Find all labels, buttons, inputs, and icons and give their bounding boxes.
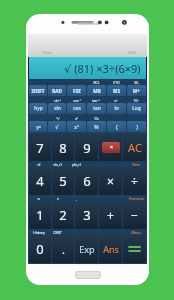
- staticText: STO: [113, 80, 120, 85]
- staticText: hyp: [34, 105, 43, 112]
- button[interactable]: (: [107, 121, 126, 132]
- staticText: Exp: [79, 243, 95, 255]
- staticText: x²: [74, 123, 79, 130]
- button[interactable]: FSE: [67, 85, 86, 96]
- staticText: tan: [93, 105, 101, 112]
- staticText: ln: [114, 105, 119, 112]
- button[interactable]: AC: [123, 134, 146, 161]
- staticText: ÷: [131, 173, 138, 189]
- staticText: c(n,r): [53, 162, 62, 167]
- staticText: Rate: [132, 162, 140, 167]
- button[interactable]: %: [87, 121, 106, 132]
- staticText: History: [33, 230, 45, 235]
- staticText: FSE: [73, 88, 81, 94]
- staticText: eˣ: [114, 98, 118, 103]
- staticText: −: [131, 207, 138, 223]
- staticText: sin: [54, 105, 61, 112]
- staticText: 3: [83, 206, 91, 224]
- staticText: π: [37, 196, 40, 201]
- staticText: M+: [133, 88, 140, 94]
- button[interactable]: Log: [127, 103, 146, 114]
- button[interactable]: ): [127, 121, 146, 132]
- staticText: p(n,r): [72, 162, 81, 167]
- staticText: ³√: [56, 116, 60, 121]
- staticText: 6: [83, 172, 91, 190]
- staticText: 5: [59, 172, 67, 190]
- staticText: 0: [36, 240, 44, 258]
- staticText: √: [55, 124, 59, 130]
- button[interactable]: √: [48, 121, 66, 132]
- staticText: cos: [73, 105, 81, 112]
- button[interactable]: Backspace: [99, 134, 122, 161]
- button[interactable]: M+: [127, 85, 146, 96]
- staticText: %: [94, 123, 99, 130]
- button[interactable]: cos: [67, 103, 86, 114]
- staticText: AC: [128, 140, 142, 155]
- button[interactable]: Home: [75, 271, 101, 279]
- staticText: .: [62, 242, 65, 257]
- button[interactable]: 0: [29, 235, 51, 263]
- button[interactable]: Equals: [123, 235, 146, 263]
- button[interactable]: MS: [107, 85, 126, 96]
- staticText: 1: [36, 206, 44, 224]
- button[interactable]: ÷: [123, 167, 146, 195]
- button[interactable]: tan: [87, 103, 106, 114]
- staticText: 7: [36, 139, 44, 157]
- button[interactable]: −: [123, 201, 146, 229]
- button[interactable]: hyp: [29, 103, 47, 114]
- button[interactable]: x²: [67, 121, 86, 132]
- staticText: M-: [134, 80, 139, 85]
- button[interactable]: 1: [29, 201, 51, 229]
- button[interactable]: Ans: [99, 235, 122, 263]
- staticText: n!: [37, 162, 41, 167]
- staticText: 10ˣ: [133, 98, 139, 103]
- button[interactable]: 7: [29, 134, 51, 161]
- staticText: ×: [107, 173, 114, 189]
- staticText: Float: [42, 50, 52, 55]
- staticText: √ (81) ×3÷(6×9): [64, 61, 141, 76]
- staticText: +: [107, 207, 114, 223]
- button[interactable]: ln: [107, 103, 126, 114]
- button[interactable]: 4: [29, 167, 51, 195]
- button[interactable]: 5: [52, 167, 74, 195]
- staticText: ): [136, 123, 138, 130]
- staticText: Menu: [131, 230, 141, 235]
- button[interactable]: 8: [52, 134, 74, 161]
- staticText: RCL: [93, 80, 100, 85]
- button[interactable]: Exp: [75, 235, 98, 263]
- button[interactable]: 3: [75, 201, 98, 229]
- staticText: CNST: [53, 230, 62, 235]
- staticText: Log: [132, 105, 141, 112]
- button[interactable]: MR: [87, 85, 106, 96]
- staticText: tan⁻¹: [92, 98, 100, 103]
- button[interactable]: SHIFT: [29, 85, 47, 96]
- staticText: SHIFT: [31, 88, 45, 94]
- button[interactable]: .: [52, 235, 74, 263]
- button[interactable]: +: [99, 201, 122, 229]
- staticText: 8: [59, 139, 67, 157]
- staticText: MR: [93, 88, 101, 94]
- staticText: (: [116, 123, 118, 130]
- staticText: 4: [36, 172, 44, 190]
- staticText: cos⁻¹: [73, 98, 81, 103]
- staticText: DEG: [128, 50, 137, 55]
- staticText: yˣ: [36, 123, 41, 130]
- button[interactable]: 2: [52, 201, 74, 229]
- staticText: ,: [76, 196, 77, 201]
- staticText: sin⁻¹: [54, 98, 61, 103]
- button[interactable]: RAD: [48, 85, 66, 96]
- staticText: 1/x: [94, 116, 99, 121]
- staticText: ×: [110, 144, 113, 151]
- button[interactable]: 9: [75, 134, 98, 161]
- button[interactable]: ×: [99, 167, 122, 195]
- staticText: Ans: [103, 243, 119, 255]
- staticText: MS: [113, 88, 120, 94]
- staticText: SAMSUNG: [77, 21, 99, 27]
- button[interactable]: 6: [75, 167, 98, 195]
- staticText: e: [57, 196, 59, 201]
- staticText: 9: [83, 139, 91, 157]
- button[interactable]: yˣ: [29, 121, 47, 132]
- staticText: 2: [59, 206, 67, 224]
- staticText: x³: [75, 116, 78, 121]
- button[interactable]: sin: [48, 103, 66, 114]
